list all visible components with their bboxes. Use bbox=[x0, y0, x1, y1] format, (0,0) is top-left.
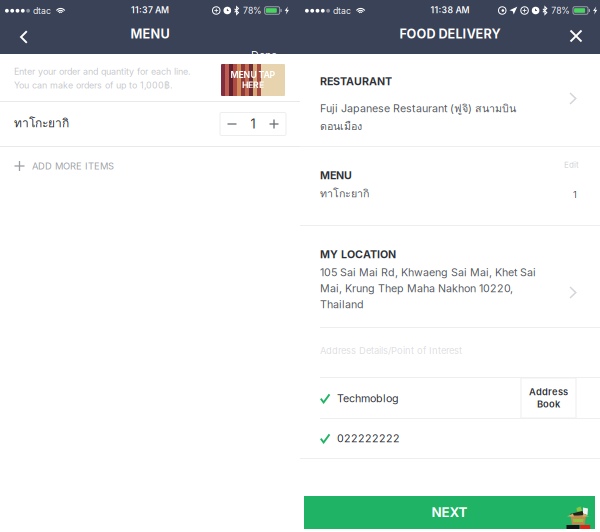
staticText: 1 bbox=[250, 116, 255, 132]
staticText: MENU TAP bbox=[230, 69, 275, 80]
staticText: MENU bbox=[130, 26, 169, 42]
staticText: 1 bbox=[573, 189, 577, 200]
staticText: 11:38 AM bbox=[430, 5, 469, 15]
staticText: Thailand bbox=[320, 298, 364, 311]
staticText: 78% bbox=[551, 5, 570, 16]
staticText: 022222222 bbox=[337, 432, 400, 445]
staticText: Techmoblog bbox=[337, 392, 399, 405]
staticText: ทาโกะยากิ bbox=[14, 113, 69, 133]
button[interactable]: NEXT bbox=[304, 496, 595, 529]
staticText: dtac bbox=[33, 5, 51, 16]
button[interactable]: Decrease quantity bbox=[221, 113, 243, 135]
staticText: dtac bbox=[333, 5, 351, 16]
staticText: FOOD DELIVERY bbox=[399, 26, 500, 42]
staticText: HERE bbox=[242, 80, 264, 90]
staticText: Book bbox=[537, 398, 560, 410]
staticText: Address Details/Point of Interest bbox=[320, 345, 462, 356]
staticText: NEXT bbox=[431, 504, 467, 520]
button[interactable]: ADD MORE ITEMS bbox=[0, 147, 300, 185]
button[interactable]: Address bbox=[521, 378, 576, 418]
button[interactable]: Increase quantity bbox=[263, 113, 285, 135]
staticText: 78% bbox=[243, 5, 262, 16]
button[interactable]: RESTAURANT bbox=[300, 54, 600, 146]
staticText: 11:37 AM bbox=[131, 5, 169, 15]
staticText: Done bbox=[251, 48, 277, 61]
button[interactable]: Back bbox=[5, 20, 43, 54]
staticText: ADD MORE ITEMS bbox=[32, 160, 114, 172]
button[interactable]: Close bbox=[558, 20, 594, 52]
staticText: Mai, Krung Thep Maha Nakhon 10220, bbox=[320, 282, 513, 295]
staticText: You can make orders of up to 1,000฿. bbox=[14, 80, 173, 91]
staticText: RESTAURANT bbox=[320, 75, 392, 88]
staticText: Address bbox=[529, 386, 568, 397]
button[interactable]: Menu photo bbox=[221, 64, 285, 96]
staticText: 105 Sai Mai Rd, Khwaeng Sai Mai, Khet Sa… bbox=[320, 266, 536, 279]
staticText: MENU bbox=[320, 169, 352, 182]
staticText: Enter your order and quantity for each l… bbox=[14, 66, 191, 77]
button[interactable]: Done bbox=[242, 40, 286, 70]
staticText: Fuji Japanese Restaurant (ฟูจิ) สนามบิน bbox=[320, 100, 516, 117]
staticText: MY LOCATION bbox=[320, 248, 396, 261]
staticText: ทาโกะยากิ bbox=[320, 185, 369, 202]
staticText: Edit bbox=[564, 160, 579, 170]
staticText: ดอนเมือง bbox=[320, 118, 362, 135]
